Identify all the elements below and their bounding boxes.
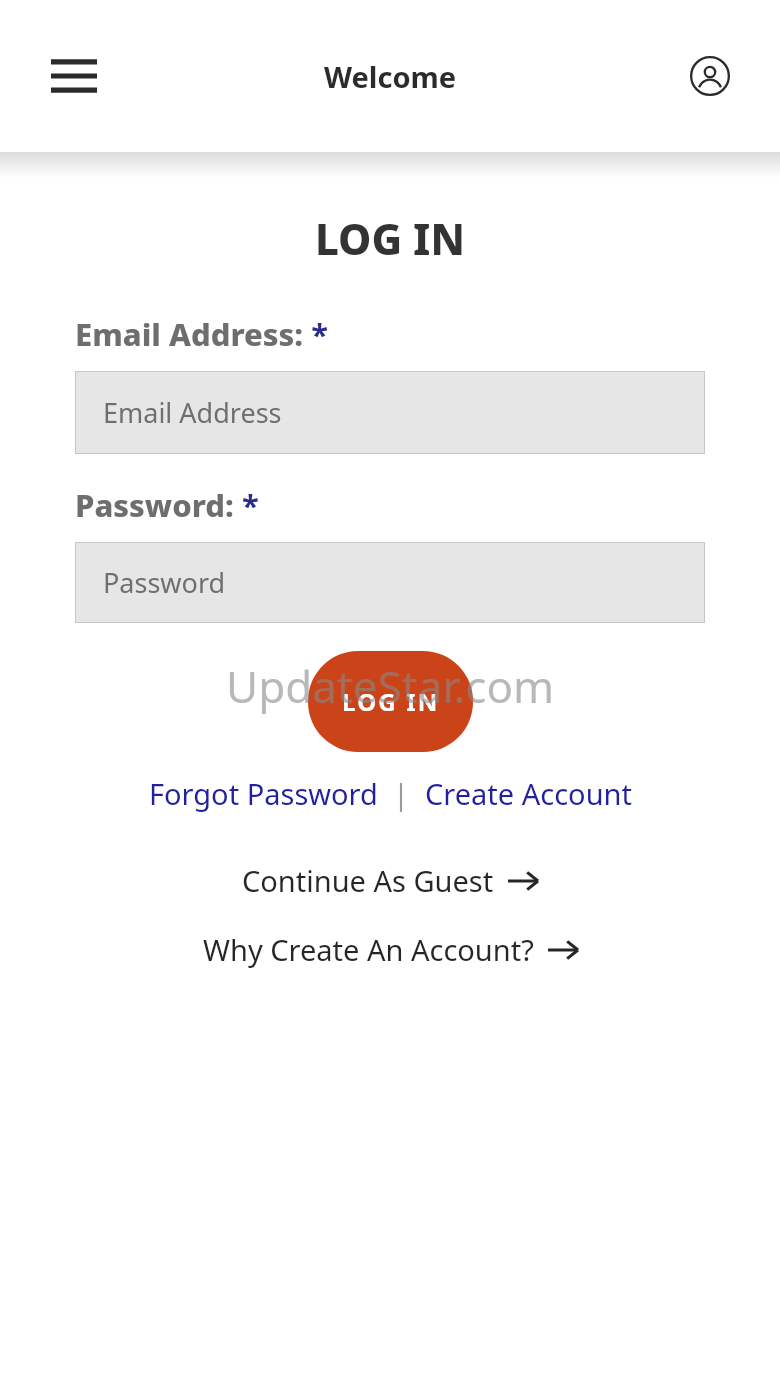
staticText: UpdateStar.com	[226, 656, 555, 716]
button[interactable]: Password	[75, 542, 705, 623]
staticText: Continue As Guest	[242, 861, 494, 900]
staticText: Create Account	[425, 774, 632, 813]
button[interactable]: Why Create An Account?	[0, 926, 780, 973]
staticText: LOG IN	[342, 685, 440, 718]
staticText: |	[378, 774, 425, 813]
button[interactable]: Menu	[38, 40, 110, 112]
button[interactable]: Forgot Password	[149, 774, 378, 813]
button[interactable]: Create Account	[425, 774, 632, 813]
staticText: Why Create An Account?	[203, 930, 534, 969]
staticText: Password	[103, 564, 226, 601]
button[interactable]: Account	[676, 42, 744, 110]
button[interactable]: Email Address	[75, 371, 705, 454]
staticText: Forgot Password	[149, 774, 378, 813]
staticText: Email Address	[103, 394, 282, 431]
staticText: Welcome	[324, 57, 457, 96]
button[interactable]: Continue As Guest	[0, 857, 780, 904]
button[interactable]: LOG IN	[308, 651, 473, 752]
staticText: Password: *	[75, 484, 259, 526]
staticText: Email Address: *	[75, 313, 329, 355]
staticText: LOG IN	[0, 210, 780, 267]
